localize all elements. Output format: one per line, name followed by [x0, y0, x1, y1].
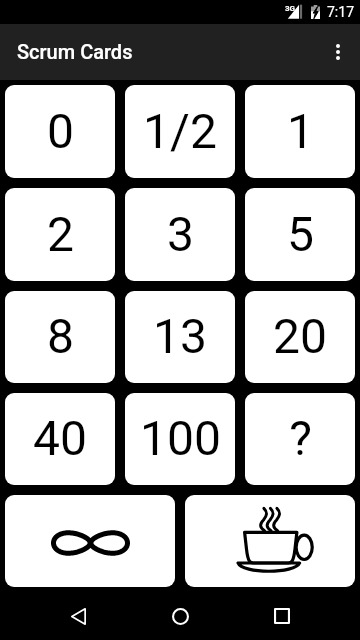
button[interactable]: Recent apps — [258, 592, 306, 640]
staticText: Scrum Cards — [17, 40, 133, 63]
staticText: 1 — [287, 103, 314, 159]
staticText: 7:17 — [327, 4, 354, 20]
staticText: 20 — [273, 308, 327, 364]
button[interactable]: Back — [54, 592, 102, 640]
button[interactable]: Home — [156, 592, 204, 640]
button[interactable]: 2 — [5, 188, 115, 281]
button[interactable]: 0 — [5, 85, 115, 178]
button[interactable]: 1/2 — [125, 85, 235, 178]
button[interactable]: ? — [245, 393, 355, 485]
staticText: 3G — [285, 4, 296, 13]
button[interactable]: 13 — [125, 291, 235, 383]
staticText: 5 — [287, 206, 314, 262]
button[interactable]: 100 — [125, 393, 235, 485]
button[interactable]: Infinity card — [5, 495, 175, 587]
staticText: ? — [289, 410, 312, 466]
staticText: 3 — [167, 206, 194, 262]
button[interactable]: 5 — [245, 188, 355, 281]
button[interactable]: More options — [316, 24, 360, 80]
button[interactable]: 40 — [5, 393, 115, 485]
button[interactable]: 8 — [5, 291, 115, 383]
staticText: 0 — [47, 103, 74, 159]
staticText: 2 — [47, 206, 74, 262]
button[interactable]: 3 — [125, 188, 235, 281]
staticText: 8 — [47, 308, 74, 364]
staticText: 1/2 — [143, 103, 217, 159]
staticText: 40 — [33, 410, 87, 466]
button[interactable]: Coffee break card — [185, 495, 355, 587]
staticText: 100 — [140, 410, 221, 466]
staticText: 13 — [153, 308, 207, 364]
button[interactable]: 1 — [245, 85, 355, 178]
button[interactable]: 20 — [245, 291, 355, 383]
